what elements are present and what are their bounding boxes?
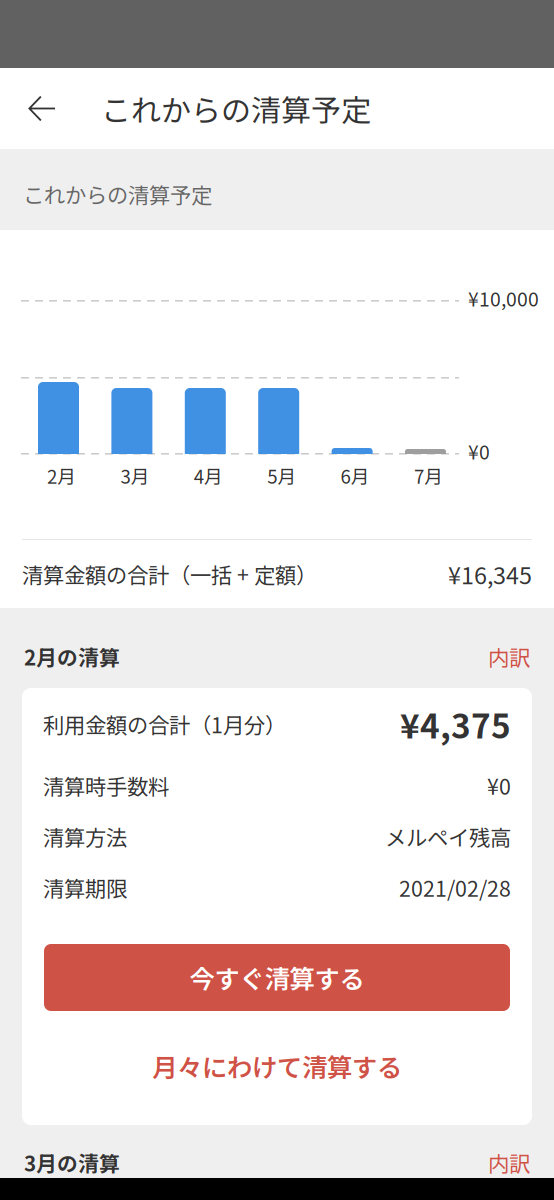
staticText: 清算方法 <box>43 821 127 852</box>
staticText: ¥16,345 <box>448 557 532 591</box>
staticText: ¥0 <box>468 437 490 465</box>
staticText: 今すぐ清算する <box>189 959 364 996</box>
staticText: 5月 <box>267 462 296 489</box>
staticText: 6月 <box>341 462 370 489</box>
staticText: 3月の清算 <box>24 1147 120 1177</box>
staticText: これからの清算予定 <box>23 179 212 209</box>
staticText: 2021/02/28 <box>399 872 511 903</box>
button[interactable]: 内訳 <box>468 635 530 678</box>
staticText: 清算金額の合計（一括 + 定額） <box>22 559 317 589</box>
staticText: ¥10,000 <box>468 284 539 312</box>
staticText: 2月 <box>47 462 76 489</box>
button[interactable]: 月々にわけて清算する <box>44 1037 510 1095</box>
button[interactable]: Back <box>12 78 72 138</box>
staticText: 月々にわけて清算する <box>152 1048 402 1084</box>
staticText: 2月の清算 <box>24 641 120 671</box>
staticText: 内訳 <box>488 641 530 672</box>
button[interactable]: 今すぐ清算する <box>44 944 510 1011</box>
staticText: メルペイ残高 <box>385 821 511 852</box>
staticText: これからの清算予定 <box>101 87 371 130</box>
staticText: ¥0 <box>487 770 511 801</box>
staticText: 清算期限 <box>43 872 127 903</box>
staticText: 4月 <box>194 462 223 489</box>
staticText: 3月 <box>120 462 149 489</box>
staticText: 清算時手数料 <box>43 770 169 801</box>
staticText: 内訳 <box>488 1147 530 1178</box>
staticText: 7月 <box>414 462 443 489</box>
button[interactable]: 内訳 <box>468 1141 530 1184</box>
staticText: ¥4,375 <box>400 700 511 748</box>
staticText: 利用金額の合計（1月分） <box>43 709 286 739</box>
